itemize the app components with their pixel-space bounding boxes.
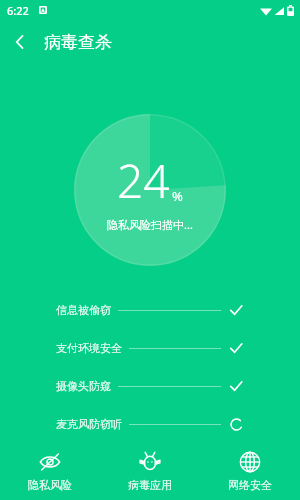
button[interactable]: 支付环境安全 xyxy=(56,338,244,358)
staticText: 隐私风险扫描中... xyxy=(107,217,193,232)
staticText: 6:22 xyxy=(7,3,29,18)
staticText: 病毒应用 xyxy=(128,478,172,492)
button[interactable]: 网络安全 xyxy=(200,442,300,500)
button[interactable]: Back xyxy=(0,22,40,62)
button[interactable]: 麦克风防窃听 xyxy=(56,414,244,434)
staticText: 24 xyxy=(117,149,170,212)
staticText: 隐私风险 xyxy=(28,478,72,492)
staticText: 支付环境安全 xyxy=(56,341,122,355)
button[interactable]: 摄像头防窥 xyxy=(56,376,244,396)
button[interactable]: 病毒应用 xyxy=(100,442,200,500)
other: 隐私风险 xyxy=(39,451,61,473)
staticText: 病毒查杀 xyxy=(44,32,112,53)
other: 病毒应用 xyxy=(139,451,161,473)
staticText: 摄像头防窥 xyxy=(56,379,111,393)
staticText: 麦克风防窃听 xyxy=(56,417,122,431)
other: 网络安全 xyxy=(239,451,261,473)
staticText: 网络安全 xyxy=(228,478,272,492)
button[interactable]: 隐私风险 xyxy=(0,442,100,500)
staticText: 信息被偷窃 xyxy=(56,303,111,317)
button[interactable]: 信息被偷窃 xyxy=(56,300,244,320)
staticText: % xyxy=(172,187,183,205)
